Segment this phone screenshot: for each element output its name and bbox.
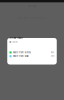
staticText: Deny: [50, 55, 54, 57]
staticText: Allow Paste: [9, 37, 22, 39]
staticText: Safari: [12, 41, 17, 43]
staticText: Paste from Mail: [13, 55, 28, 57]
staticText: Paste from Notes: [13, 51, 31, 54]
staticText: Allow: [50, 51, 54, 54]
